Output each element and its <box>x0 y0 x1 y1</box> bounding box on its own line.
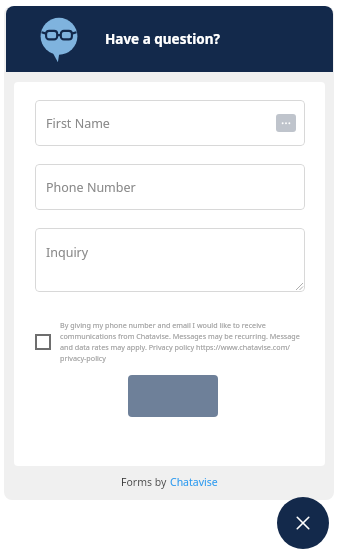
button[interactable]: Consent checkbox <box>35 334 51 350</box>
staticText: Forms by <box>121 475 170 489</box>
staticText: First Name <box>46 115 110 132</box>
button[interactable]: Chatavise <box>170 475 218 489</box>
button[interactable]: Submit <box>128 375 218 417</box>
staticText: Inquiry <box>46 244 89 261</box>
staticText: Have a question? <box>105 30 220 48</box>
button[interactable]: Close <box>277 497 329 549</box>
staticText: Phone Number <box>46 179 136 196</box>
staticText: By giving my phone number and email I wo… <box>60 320 305 363</box>
button[interactable]: First Name <box>35 100 305 146</box>
button[interactable]: Phone Number <box>35 164 305 210</box>
button[interactable]: Suggestions <box>276 114 296 132</box>
button[interactable]: Inquiry <box>35 228 305 292</box>
